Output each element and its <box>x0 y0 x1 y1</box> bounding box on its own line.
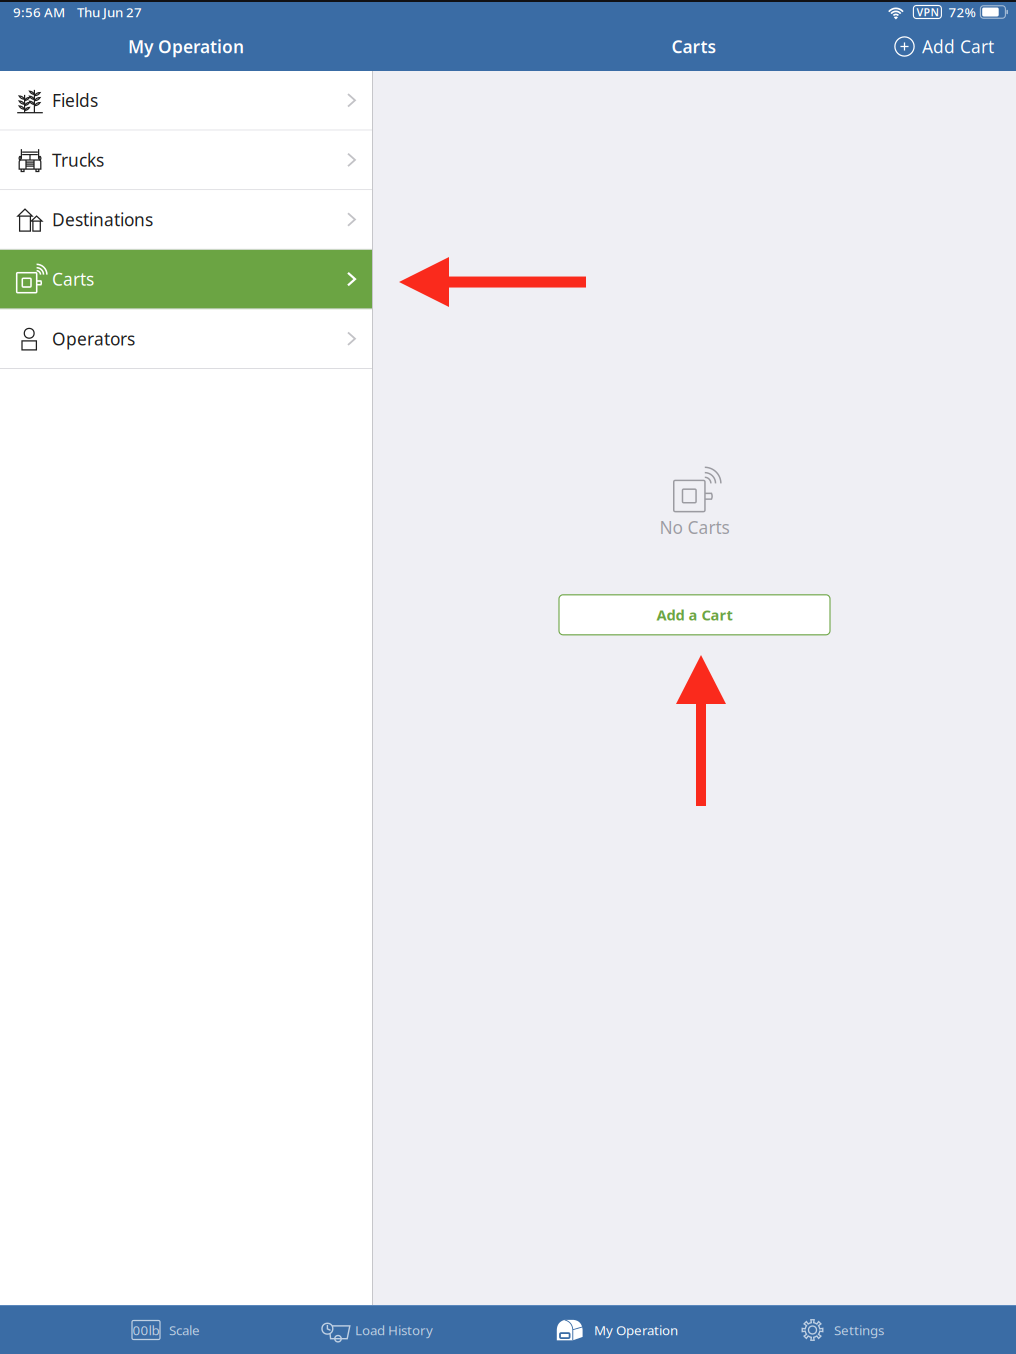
button[interactable]: Carts <box>0 250 372 309</box>
button[interactable]: Load History <box>318 1306 437 1354</box>
button[interactable]: Destinations <box>0 190 372 250</box>
staticText: No Carts <box>659 516 729 539</box>
staticText: Settings <box>834 1321 884 1339</box>
button[interactable]: Add Cart <box>894 22 1016 71</box>
staticText: Fields <box>52 89 98 112</box>
staticText: Load History <box>355 1321 433 1339</box>
staticText: 9:56 AM <box>13 3 65 21</box>
staticText: Trucks <box>52 148 104 171</box>
button[interactable]: My Operation <box>551 1306 682 1354</box>
staticText: 00lb <box>132 1321 159 1339</box>
staticText: Carts <box>671 35 716 58</box>
button[interactable]: Operators <box>0 309 372 369</box>
button[interactable]: Trucks <box>0 131 372 190</box>
button[interactable]: 00lb <box>128 1306 204 1354</box>
button[interactable]: Fields <box>0 71 372 131</box>
staticText: My Operation <box>594 1321 678 1339</box>
staticText: Add Cart <box>922 35 994 58</box>
button[interactable]: Add a Cart <box>559 595 830 635</box>
button[interactable]: Settings <box>796 1306 888 1354</box>
staticText: 72% <box>948 3 975 21</box>
staticText: Thu Jun 27 <box>77 3 142 21</box>
staticText: Add a Cart <box>656 605 732 625</box>
staticText: Scale <box>169 1321 200 1339</box>
staticText: VPN <box>916 5 938 19</box>
staticText: Carts <box>52 268 94 291</box>
staticText: My Operation <box>128 35 244 58</box>
staticText: Operators <box>52 327 135 350</box>
staticText: Destinations <box>52 208 153 231</box>
